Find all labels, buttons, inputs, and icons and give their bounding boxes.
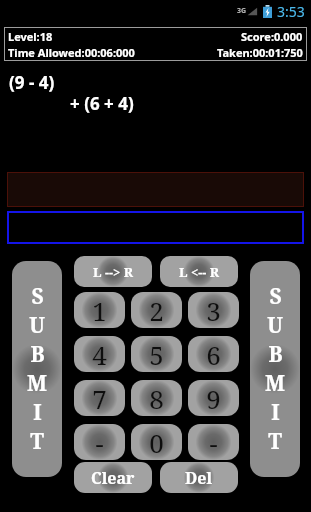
button[interactable]: 4 <box>74 336 125 372</box>
staticText: - <box>95 425 104 460</box>
staticText: 1 <box>92 293 107 328</box>
staticText: B <box>30 340 45 369</box>
staticText: S <box>31 282 44 311</box>
staticText: M <box>27 369 47 398</box>
staticText: M <box>265 369 285 398</box>
button[interactable]: Submit <box>250 261 300 477</box>
button[interactable]: Clear <box>74 462 152 493</box>
button[interactable]: L --> R <box>74 256 152 287</box>
button[interactable]: 2 <box>131 292 182 328</box>
staticText: - <box>209 425 218 460</box>
staticText: 3 <box>206 293 221 328</box>
staticText: + (6 + 4) <box>70 92 134 115</box>
button[interactable]: 5 <box>131 336 182 372</box>
staticText: 3G <box>237 6 247 16</box>
staticText: 8 <box>149 381 164 416</box>
staticText: 4 <box>92 337 107 372</box>
staticText: L --> R <box>93 263 133 281</box>
staticText: B <box>268 340 283 369</box>
staticText: U <box>29 311 45 340</box>
button[interactable]: 6 <box>188 336 239 372</box>
staticText: 6 <box>206 337 221 372</box>
button[interactable]: 8 <box>131 380 182 416</box>
staticText: U <box>267 311 283 340</box>
staticText: 3:53 <box>277 2 305 21</box>
button[interactable]: 3 <box>188 292 239 328</box>
button[interactable]: 7 <box>74 380 125 416</box>
button[interactable]: Submit <box>12 261 62 477</box>
staticText: Score:0.000 <box>241 29 303 44</box>
button[interactable]: Del <box>160 462 238 493</box>
staticText: I <box>271 398 280 427</box>
staticText: 5 <box>149 337 164 372</box>
staticText: Taken:00:01:750 <box>217 45 303 60</box>
staticText: 9 <box>206 381 221 416</box>
staticText: Level:18 <box>8 29 53 44</box>
staticText: (9 - 4) <box>9 71 55 94</box>
staticText: Time Allowed:00:06:000 <box>8 45 135 60</box>
staticText: T <box>30 427 44 456</box>
button[interactable]: L <-- R <box>160 256 238 287</box>
staticText: 2 <box>149 293 164 328</box>
staticText: S <box>269 282 282 311</box>
button[interactable]: 9 <box>188 380 239 416</box>
staticText: T <box>268 427 282 456</box>
staticText: I <box>33 398 42 427</box>
button[interactable]: Minus <box>74 424 125 460</box>
staticText: 0 <box>149 425 164 460</box>
staticText: Del <box>185 467 213 489</box>
button[interactable]: 1 <box>74 292 125 328</box>
button[interactable]: 0 <box>131 424 182 460</box>
staticText: L <-- R <box>179 263 219 281</box>
button[interactable]: Minus <box>188 424 239 460</box>
staticText: 7 <box>92 381 107 416</box>
staticText: Clear <box>91 467 135 489</box>
